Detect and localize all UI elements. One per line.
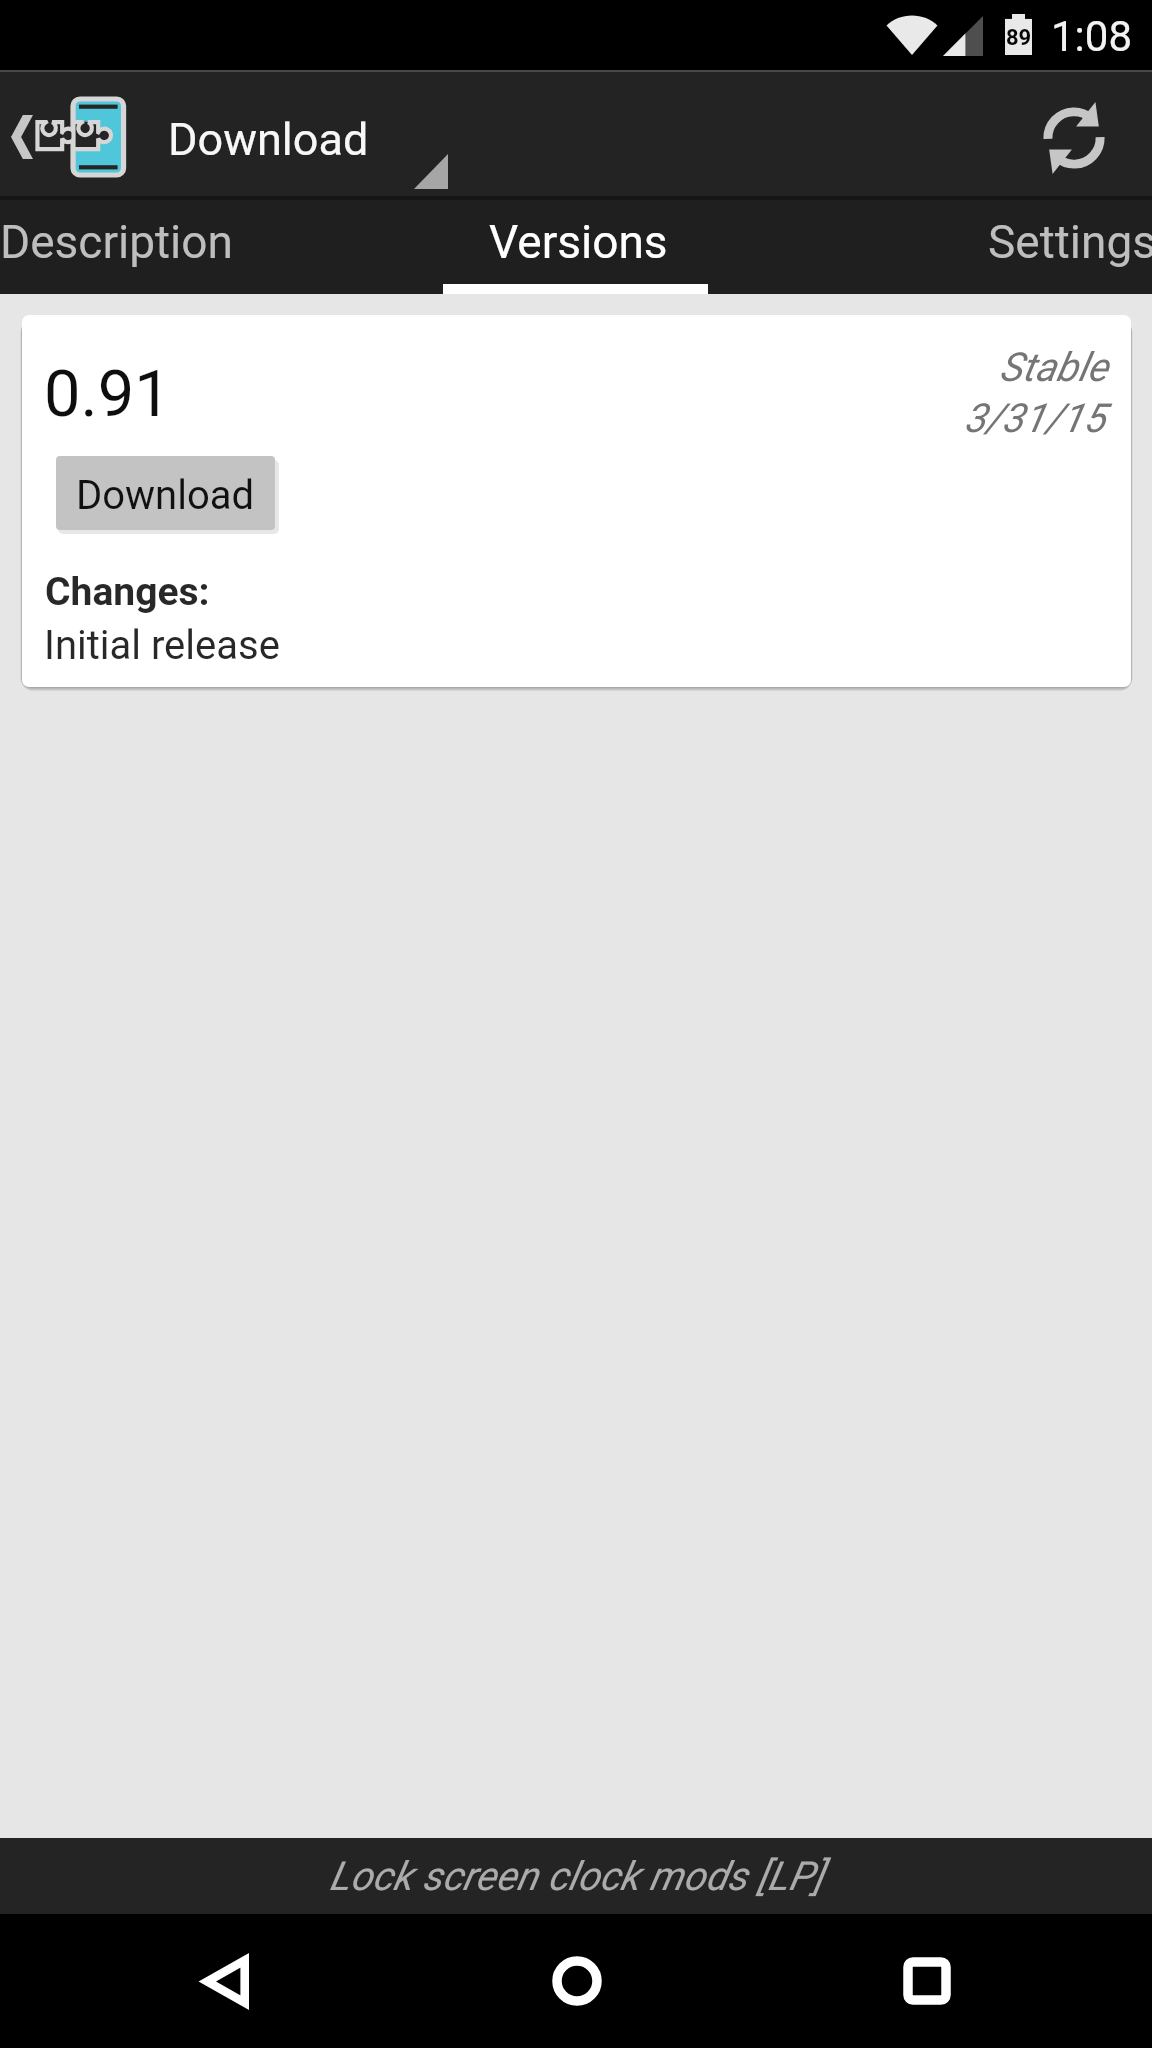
staticText: 3/31/15: [964, 395, 1106, 442]
staticText: Stable: [999, 344, 1108, 391]
button[interactable]: 0.91: [22, 315, 1131, 687]
button[interactable]: Versions: [443, 200, 708, 294]
button[interactable]: Description: [0, 200, 443, 294]
staticText: 89: [1006, 25, 1032, 51]
staticText: Versions: [489, 215, 668, 269]
staticText: 0.91: [44, 356, 171, 432]
button[interactable]: Navigate up: [0, 70, 155, 200]
staticText: Download: [76, 472, 255, 519]
staticText: 1:08: [1051, 12, 1132, 61]
button[interactable]: Settings: [708, 200, 1152, 294]
button[interactable]: Refresh: [1000, 70, 1152, 200]
button[interactable]: Back: [128, 1914, 318, 2048]
staticText: Download: [168, 113, 369, 166]
button[interactable]: Recent apps: [832, 1914, 1022, 2048]
button[interactable]: Download: [56, 456, 275, 530]
button[interactable]: Home: [482, 1914, 672, 2048]
staticText: Lock screen clock mods [LP]: [329, 1853, 823, 1900]
staticText: Initial release: [44, 622, 280, 669]
staticText: Changes:: [45, 569, 210, 615]
staticText: Settings: [988, 215, 1152, 269]
staticText: Description: [0, 215, 233, 269]
